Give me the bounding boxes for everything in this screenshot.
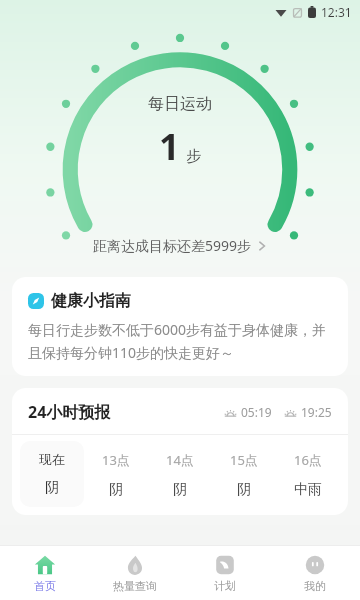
button[interactable]: 首页 bbox=[0, 546, 90, 600]
staticText: 19:25 bbox=[301, 404, 332, 420]
button[interactable]: 13点 bbox=[84, 441, 148, 509]
staticText: 1 bbox=[159, 122, 180, 171]
staticText: 阴 bbox=[45, 479, 59, 497]
staticText: 步 bbox=[186, 147, 201, 166]
staticText: 现在 bbox=[39, 451, 65, 467]
staticText: 阴 bbox=[173, 481, 187, 499]
button[interactable]: 健康小指南 bbox=[12, 277, 348, 376]
staticText: 14点 bbox=[166, 451, 194, 469]
staticText: 热量查询 bbox=[113, 579, 157, 593]
staticText: 16点 bbox=[294, 451, 322, 469]
button[interactable]: 热量查询 bbox=[90, 546, 180, 600]
staticText: 首页 bbox=[34, 579, 56, 593]
staticText: 12:31 bbox=[321, 4, 352, 20]
button[interactable]: 我的 bbox=[270, 546, 360, 600]
button[interactable]: 14点 bbox=[148, 441, 212, 509]
staticText: 每日行走步数不低于6000步有益于身体健康，并且保持每分钟110步的快走更好～ bbox=[28, 320, 332, 362]
staticText: 距离达成目标还差5999步 bbox=[93, 236, 252, 255]
button[interactable]: 计划 bbox=[180, 546, 270, 600]
staticText: 计划 bbox=[214, 579, 236, 593]
staticText: 24小时预报 bbox=[28, 401, 111, 423]
staticText: 15点 bbox=[230, 451, 258, 469]
staticText: 每日运动 bbox=[148, 94, 212, 114]
staticText: 阴 bbox=[109, 481, 123, 499]
button[interactable]: 16点 bbox=[276, 441, 340, 509]
staticText: 健康小指南 bbox=[51, 291, 131, 311]
staticText: 阴 bbox=[237, 481, 251, 499]
staticText: 中雨 bbox=[294, 481, 322, 499]
staticText: 13点 bbox=[102, 451, 130, 469]
button[interactable]: 24小时预报 bbox=[12, 388, 348, 434]
staticText: 05:19 bbox=[241, 404, 272, 420]
button[interactable]: 15点 bbox=[212, 441, 276, 509]
staticText: 我的 bbox=[304, 579, 326, 593]
button[interactable]: 距离达成目标还差5999步 bbox=[0, 232, 360, 259]
button[interactable]: 现在 bbox=[20, 441, 84, 507]
